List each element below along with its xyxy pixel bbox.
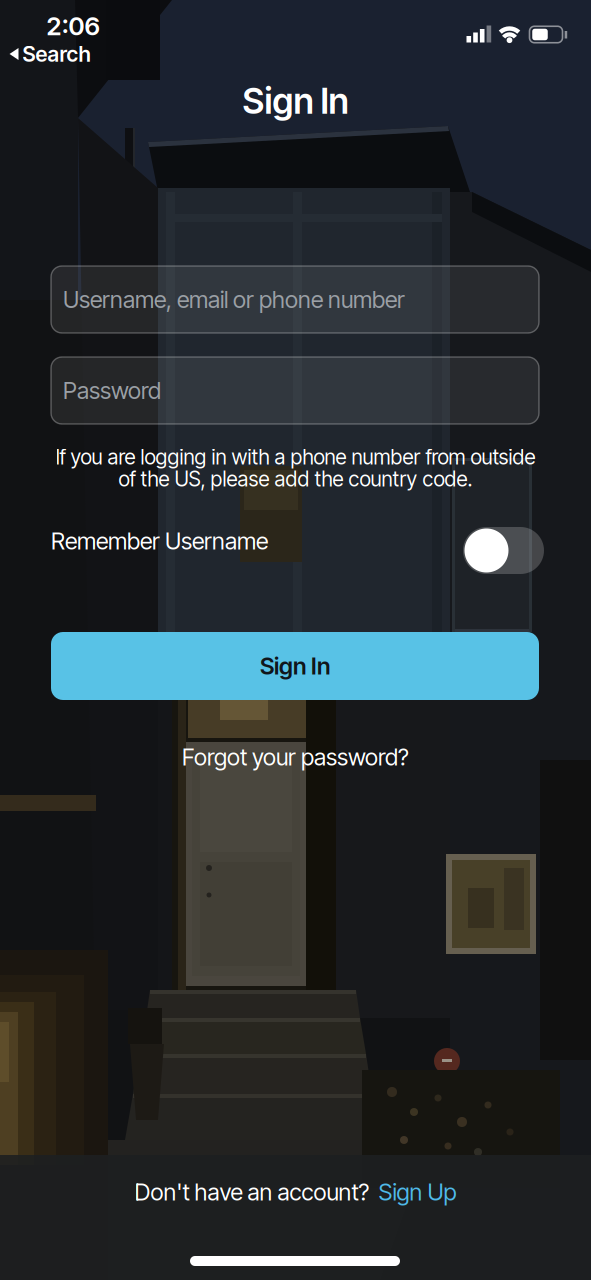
staticText: 2:06: [46, 11, 99, 41]
staticText: Sign In: [260, 652, 330, 680]
staticText: If you are logging in with a phone numbe…: [55, 444, 535, 469]
button[interactable]: Sign In: [51, 632, 539, 700]
staticText: Remember Username: [51, 527, 268, 555]
staticText: of the US, please add the country code.: [118, 466, 472, 491]
button[interactable]: Password: [51, 357, 539, 424]
staticText: Forgot your password?: [182, 743, 409, 771]
button[interactable]: Sign Up: [378, 1178, 456, 1206]
button[interactable]: Remember Username: [463, 527, 544, 574]
staticText: Don't have an account?: [134, 1178, 369, 1206]
staticText: Sign In: [242, 80, 348, 122]
staticText: Username, email or phone number: [63, 285, 405, 314]
staticText: Search: [22, 41, 90, 67]
button[interactable]: Username, email or phone number: [51, 266, 539, 333]
staticText: Password: [63, 376, 161, 405]
button[interactable]: Back to Search: [9, 41, 90, 67]
button[interactable]: Forgot your password?: [182, 743, 409, 771]
staticText: Sign Up: [378, 1178, 456, 1206]
